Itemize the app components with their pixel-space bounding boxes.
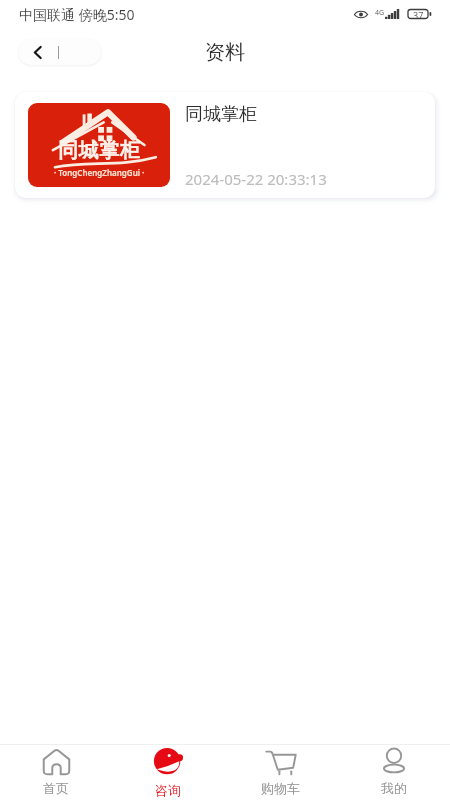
- staticText: 同城掌柜: [185, 103, 257, 126]
- staticText: 中国联通 傍晚5:50: [19, 5, 135, 24]
- staticText: 4G: [375, 8, 385, 18]
- button[interactable]: 首页: [0, 745, 112, 800]
- staticText: 同城掌柜: [58, 138, 141, 163]
- button[interactable]: Back: [18, 39, 101, 65]
- staticText: 37: [413, 9, 424, 19]
- staticText: 2024-05-22 20:33:13: [185, 169, 327, 189]
- staticText: 资料: [205, 40, 245, 65]
- staticText: 首页: [43, 780, 69, 796]
- staticText: · TongChengZhangGui ·: [54, 167, 145, 178]
- staticText: 购物车: [261, 780, 300, 796]
- button[interactable]: 咨询: [112, 745, 224, 800]
- staticText: 我的: [381, 780, 407, 796]
- button[interactable]: 购物车: [224, 745, 337, 800]
- staticText: 咨询: [155, 782, 181, 798]
- button[interactable]: 同城掌柜: [15, 92, 435, 198]
- button[interactable]: 我的: [337, 745, 450, 800]
